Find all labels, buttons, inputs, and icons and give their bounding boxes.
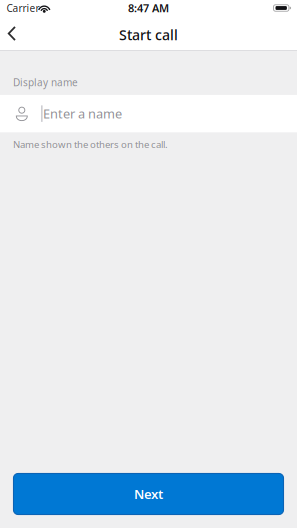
staticText: Display name: [13, 75, 78, 89]
button[interactable]: Back: [0, 15, 34, 51]
staticText: Carrier: [7, 1, 40, 15]
staticText: Next: [134, 485, 163, 503]
button[interactable]: Enter a name: [0, 95, 297, 132]
staticText: Enter a name: [43, 105, 122, 122]
staticText: Start call: [119, 25, 178, 44]
staticText: 8:47 AM: [128, 1, 169, 15]
button[interactable]: Next: [13, 473, 283, 514]
staticText: Name shown the others on the call.: [13, 138, 168, 151]
